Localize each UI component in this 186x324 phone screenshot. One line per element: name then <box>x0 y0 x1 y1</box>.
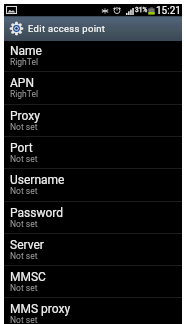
button[interactable]: Port <box>4 137 182 169</box>
staticText: Not set <box>10 219 38 229</box>
staticText: 15:21 <box>156 5 181 17</box>
staticText: Edit access point <box>28 23 106 34</box>
staticText: Name <box>10 44 42 58</box>
staticText: MMSC <box>10 270 46 284</box>
staticText: Port <box>10 141 33 155</box>
other: Alarm set <box>113 6 121 14</box>
other: Silent mode <box>101 8 109 14</box>
staticText: Proxy <box>10 109 40 123</box>
staticText: Password <box>10 206 64 220</box>
staticText: Username <box>10 173 65 187</box>
button[interactable]: Server <box>4 234 182 266</box>
staticText: Not set <box>10 186 38 196</box>
staticText: Not set <box>10 154 38 164</box>
button[interactable]: Password <box>4 202 182 234</box>
staticText: RighTel <box>10 57 38 67</box>
button[interactable]: Name <box>4 40 182 72</box>
button[interactable]: APN <box>4 72 182 104</box>
staticText: RighTel <box>10 89 38 99</box>
button[interactable]: Proxy <box>4 105 182 137</box>
button[interactable]: MMSC <box>4 266 182 298</box>
other: Signal strength <box>126 8 134 15</box>
staticText: Not set <box>10 122 38 132</box>
staticText: APN <box>10 76 34 90</box>
other: Settings <box>10 22 23 35</box>
staticText: Not set <box>10 251 38 261</box>
staticText: 31% <box>135 6 148 14</box>
staticText: Not set <box>10 283 38 293</box>
button[interactable]: Settings <box>4 16 182 41</box>
staticText: Server <box>10 238 44 252</box>
button[interactable]: MMS proxy <box>4 298 182 324</box>
staticText: MMS proxy <box>10 302 71 316</box>
staticText: Not set <box>10 315 38 324</box>
other: Battery 31 percent <box>148 6 155 15</box>
other: Screenshot captured <box>6 6 17 14</box>
button[interactable]: Username <box>4 169 182 201</box>
